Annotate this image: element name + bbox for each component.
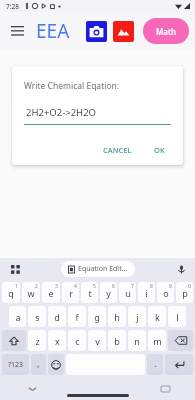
button[interactable]: Change keyboard <box>157 381 173 397</box>
button[interactable]: Menu <box>6 20 28 42</box>
button[interactable]: c <box>68 330 86 351</box>
staticText: Write Chemical Eqation: <box>24 80 120 92</box>
button[interactable]: k <box>148 306 166 327</box>
button[interactable]: h <box>108 306 126 327</box>
button[interactable]: o <box>157 282 174 303</box>
staticText: 4 <box>74 283 77 290</box>
staticText: u <box>125 287 131 299</box>
staticText: j <box>136 311 139 323</box>
staticText: o <box>163 287 169 299</box>
button[interactable]: Shift <box>2 330 26 351</box>
staticText: z <box>35 335 40 347</box>
staticText: Math <box>156 26 176 37</box>
staticText: x <box>55 335 60 347</box>
button[interactable]: Hide keyboard <box>24 381 40 397</box>
staticText: . <box>154 357 157 369</box>
button[interactable]: Camera <box>86 21 107 42</box>
button[interactable]: Toolbar <box>7 261 23 277</box>
staticText: t <box>88 287 92 299</box>
button[interactable]: d <box>48 306 66 327</box>
button[interactable]: w <box>22 282 40 303</box>
button[interactable]: t <box>81 282 98 303</box>
button[interactable]: l <box>168 306 186 327</box>
staticText: c <box>75 335 80 347</box>
staticText: r <box>69 287 73 299</box>
staticText: 3 <box>55 283 58 290</box>
staticText: i <box>145 287 148 299</box>
button[interactable]: j <box>128 306 146 327</box>
button[interactable]: Equation Edit... <box>61 261 135 277</box>
button[interactable]: p <box>176 282 193 303</box>
staticText: 1 <box>15 283 18 290</box>
button[interactable]: 2H2+O2->2H2O <box>24 106 171 125</box>
staticText: 9 <box>169 283 172 290</box>
staticText: e <box>48 287 54 299</box>
button[interactable]: ?123 <box>2 354 29 375</box>
staticText: p <box>182 287 188 299</box>
staticText: Equation Edit... <box>78 264 128 274</box>
button[interactable]: z <box>28 330 46 351</box>
staticText: v <box>95 335 100 347</box>
staticText: 2 <box>35 283 38 290</box>
staticText: f <box>75 311 79 323</box>
staticText: k <box>155 311 160 323</box>
staticText: 0 <box>188 283 191 290</box>
button[interactable]: q <box>2 282 20 303</box>
staticText: y <box>106 287 111 299</box>
staticText: a <box>15 311 21 323</box>
button[interactable]: EEA <box>36 18 70 44</box>
button[interactable]: s <box>28 306 46 327</box>
staticText: l <box>176 311 179 323</box>
staticText: d <box>54 311 60 323</box>
staticText: n <box>134 335 140 347</box>
button[interactable]: b <box>108 330 126 351</box>
button[interactable]: . <box>147 354 163 375</box>
button[interactable]: e <box>42 282 60 303</box>
button[interactable]: m <box>148 330 166 351</box>
staticText: 7 <box>131 283 134 290</box>
button[interactable]: n <box>128 330 146 351</box>
staticText: 8 <box>150 283 153 290</box>
button[interactable]: Voice input <box>173 261 189 277</box>
button[interactable]: Emoji <box>48 354 64 375</box>
staticText: ?123 <box>8 360 24 370</box>
staticText: h <box>114 311 120 323</box>
button[interactable]: f <box>68 306 86 327</box>
button[interactable]: Gallery <box>113 21 134 42</box>
staticText: OK <box>154 145 165 155</box>
button[interactable]: OK <box>148 141 171 159</box>
staticText: CANCEL <box>103 145 132 155</box>
staticText: s <box>35 311 40 323</box>
button[interactable]: Enter <box>165 354 193 375</box>
staticText: , <box>37 357 40 369</box>
button[interactable]: g <box>88 306 106 327</box>
staticText: 7:28 <box>6 2 19 11</box>
staticText: w <box>27 287 35 299</box>
staticText: b <box>114 335 120 347</box>
button[interactable]: r <box>62 282 79 303</box>
staticText: q <box>8 287 14 299</box>
button[interactable]: Backspace <box>168 330 193 351</box>
button[interactable]: a <box>9 306 26 327</box>
button[interactable]: y <box>100 282 117 303</box>
staticText: 5 <box>93 283 96 290</box>
staticText: 6 <box>112 283 115 290</box>
button[interactable]: v <box>88 330 106 351</box>
staticText: 2H2+O2->2H2O <box>26 106 97 119</box>
button[interactable]: Math <box>143 18 189 44</box>
button[interactable]: x <box>48 330 66 351</box>
staticText: m <box>153 335 162 347</box>
staticText: g <box>94 311 100 323</box>
button[interactable]: i <box>138 282 155 303</box>
button[interactable]: u <box>119 282 136 303</box>
button[interactable]: , <box>31 354 46 375</box>
button[interactable]: CANCEL <box>97 141 138 159</box>
